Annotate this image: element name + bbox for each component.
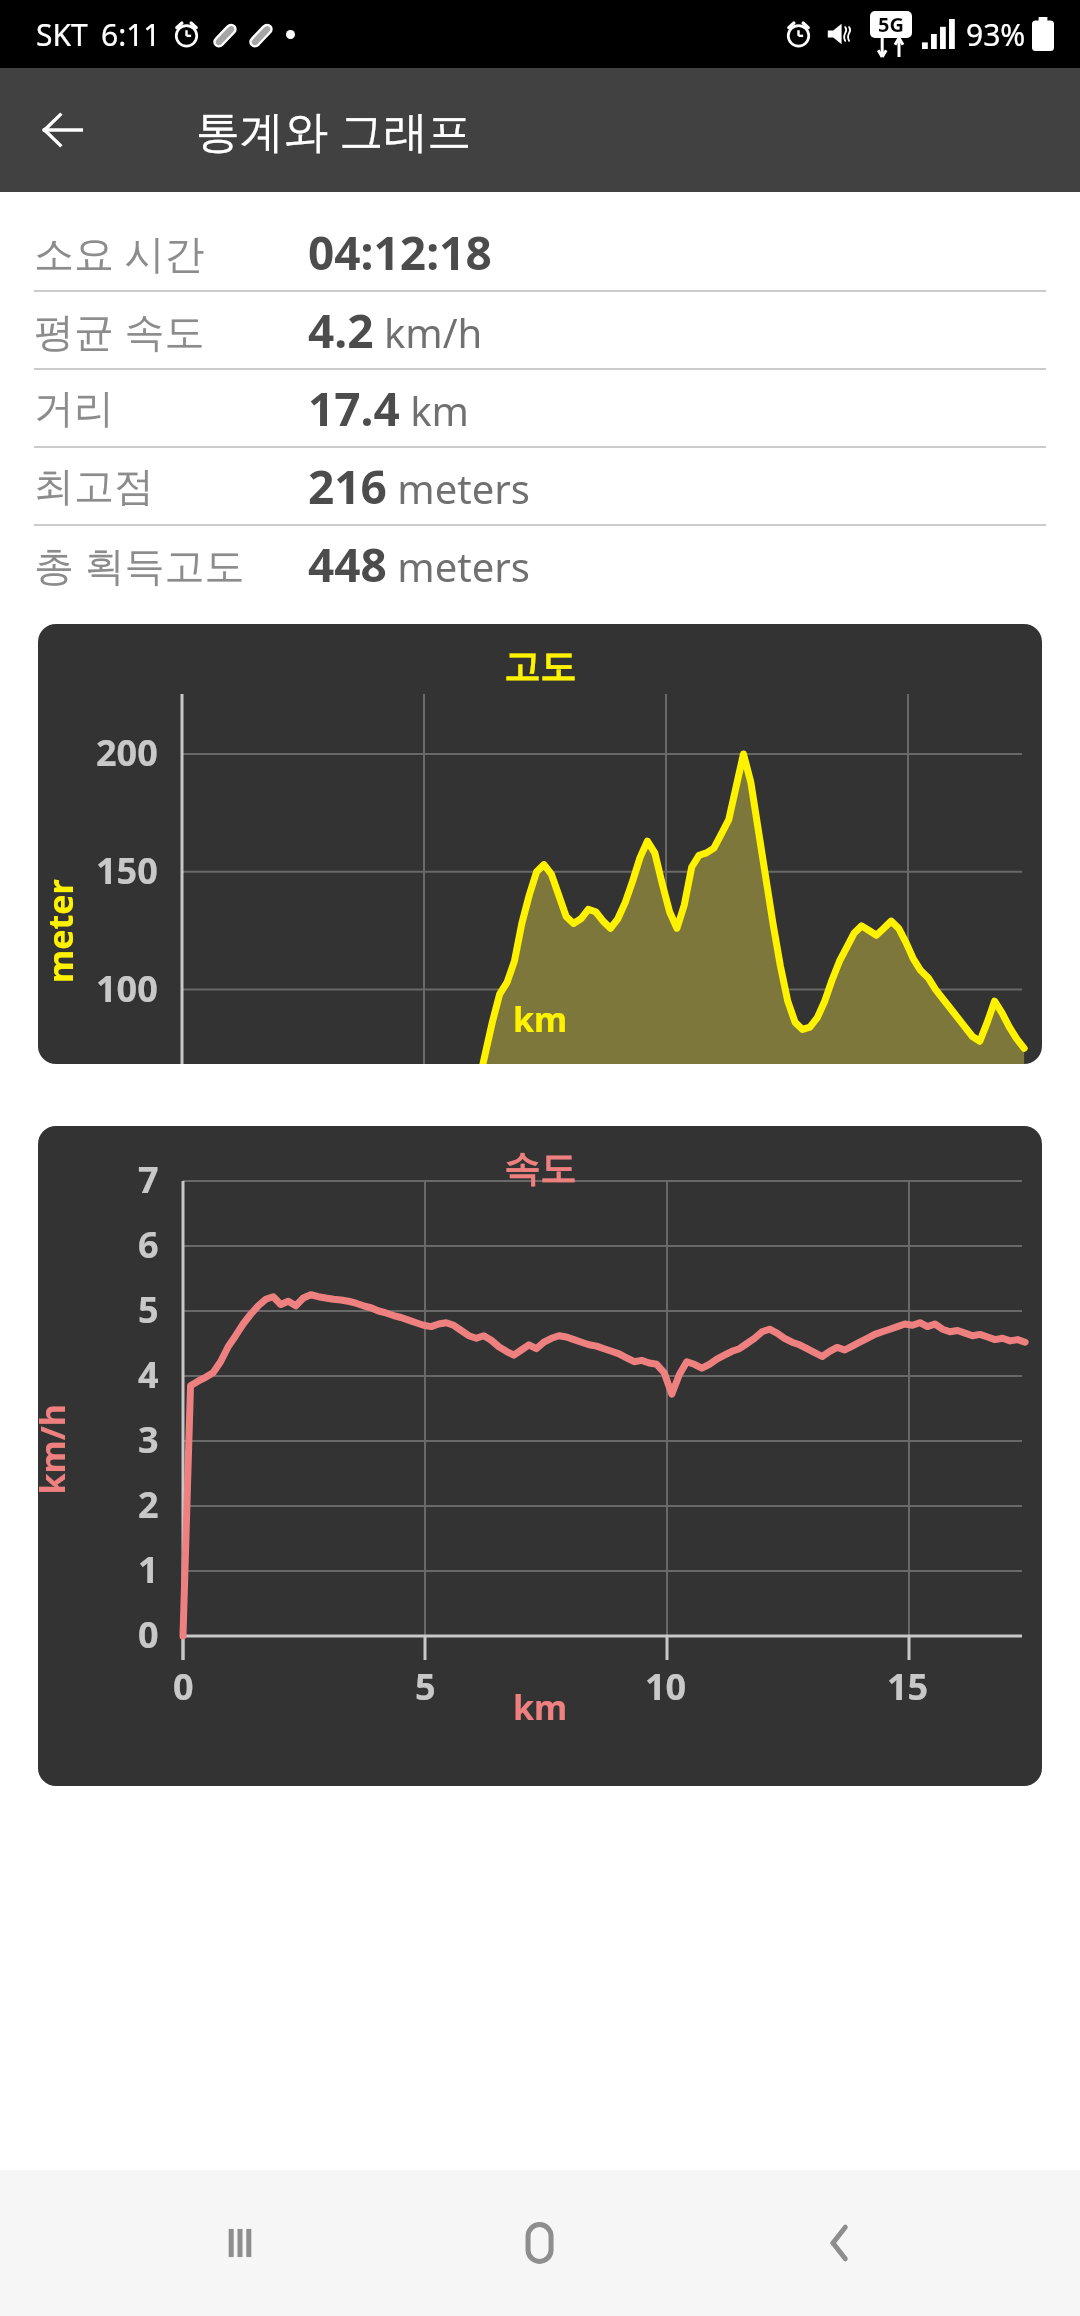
staticText: 0: [173, 1662, 194, 1711]
staticText: 3: [138, 1415, 159, 1464]
staticText: 10: [645, 1662, 687, 1711]
button[interactable]: 최고점: [34, 448, 1046, 524]
staticText: km: [513, 996, 568, 1042]
button[interactable]: 총 획득고도: [34, 526, 1046, 602]
staticText: 5G: [878, 11, 904, 38]
staticText: 93%: [966, 14, 1026, 55]
staticText: 6:11: [101, 14, 161, 55]
staticText: 7: [138, 1155, 159, 1204]
staticText: SKT: [36, 14, 88, 55]
staticText: km: [513, 1684, 568, 1730]
staticText: 200: [96, 728, 158, 777]
staticText: 총 획득고도: [34, 537, 245, 592]
staticText: 448 meters: [308, 533, 530, 596]
staticText: 04:12:18: [308, 221, 492, 284]
staticText: 2: [138, 1480, 159, 1529]
button[interactable]: Home: [480, 2183, 600, 2303]
staticText: 4: [138, 1350, 159, 1399]
staticText: 통계와 그래프: [196, 100, 472, 160]
button[interactable]: Back: [24, 92, 100, 168]
staticText: 100: [96, 964, 158, 1013]
staticText: 고도: [504, 644, 576, 689]
staticText: 최고점: [34, 461, 154, 511]
staticText: 속도: [504, 1146, 576, 1191]
staticText: 6: [138, 1220, 159, 1269]
staticText: 거리: [34, 383, 114, 433]
button[interactable]: 거리: [34, 370, 1046, 446]
staticText: 평균 속도: [34, 303, 205, 358]
button[interactable]: Recent apps: [180, 2183, 300, 2303]
button[interactable]: 소요 시간: [34, 214, 1046, 290]
staticText: 150: [96, 846, 158, 895]
button[interactable]: Back: [780, 2183, 900, 2303]
staticText: 1: [138, 1545, 159, 1594]
staticText: 소요 시간: [34, 225, 205, 280]
button[interactable]: 0: [38, 1126, 1042, 1786]
staticText: 17.4 km: [308, 377, 470, 440]
staticText: 5: [415, 1662, 436, 1711]
staticText: 0: [138, 1610, 159, 1659]
staticText: 4.2 km/h: [308, 299, 483, 362]
staticText: meter: [38, 879, 83, 983]
button[interactable]: 200: [38, 624, 1042, 1064]
staticText: km/h: [38, 1403, 74, 1494]
button[interactable]: 평균 속도: [34, 292, 1046, 368]
staticText: 216 meters: [308, 455, 530, 518]
staticText: 5: [138, 1285, 159, 1334]
staticText: 15: [887, 1662, 929, 1711]
